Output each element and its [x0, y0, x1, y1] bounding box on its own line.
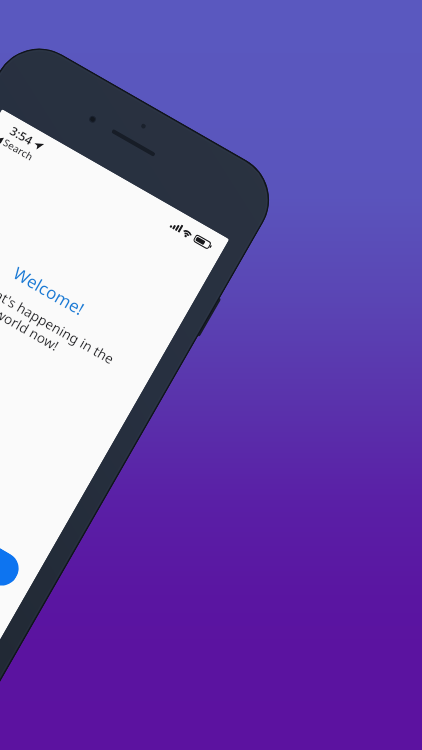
staticText: Welcome! — [9, 261, 88, 320]
staticText: See what's happening in the world now! — [0, 262, 118, 382]
button[interactable]: Get Started — [0, 449, 25, 592]
staticText: Search — [1, 135, 36, 164]
staticText: 3:54 — [7, 122, 36, 148]
